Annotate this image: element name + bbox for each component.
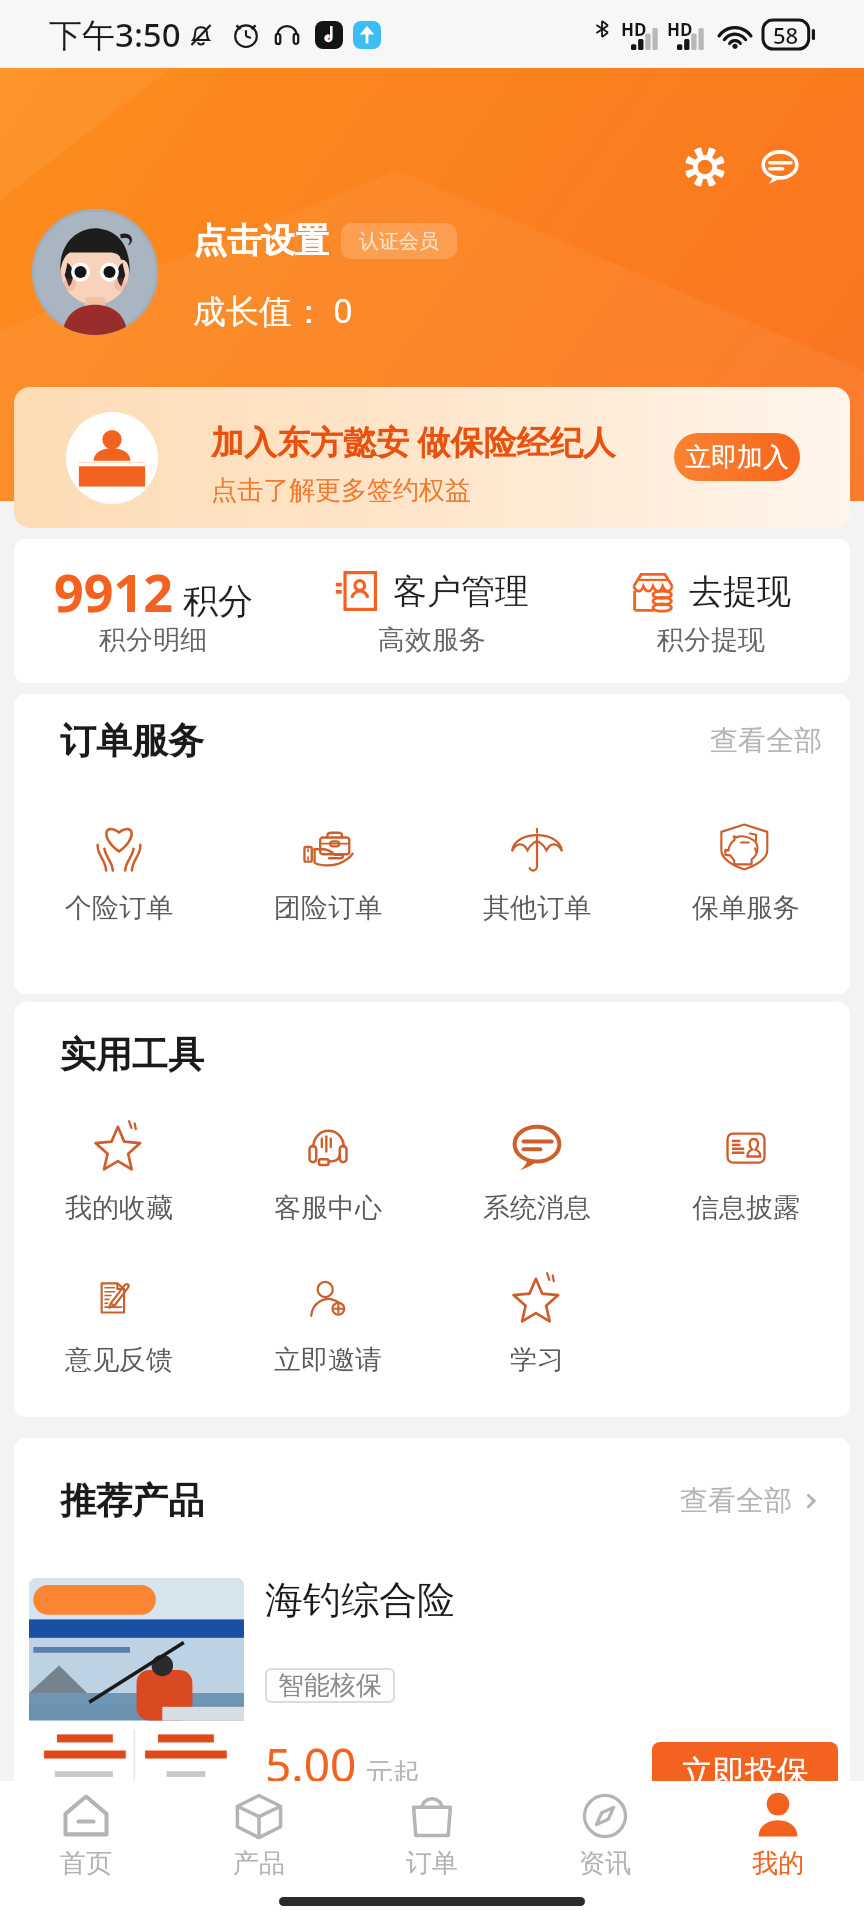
staticText: 推荐产品 <box>60 1478 204 1523</box>
staticText: 保单服务 <box>692 891 800 925</box>
staticText: 立即邀请 <box>274 1343 382 1377</box>
staticText: 实用工具 <box>60 1032 204 1077</box>
staticText: 认证会员 <box>359 229 439 254</box>
staticText: 学习 <box>510 1343 564 1377</box>
button[interactable]: 意见反馈 <box>14 1271 223 1377</box>
button[interactable] <box>29 1578 244 1808</box>
button[interactable]: 立即加入 <box>674 433 800 481</box>
button[interactable]: 保单服务 <box>641 819 850 925</box>
staticText: 查看全部 <box>680 1483 792 1518</box>
staticText: 5.00 <box>265 1733 357 1796</box>
staticText: 积分提现 <box>657 623 765 657</box>
staticText: 客服中心 <box>274 1191 382 1225</box>
button[interactable]: 立即投保 <box>652 1742 838 1802</box>
staticText: 系统消息 <box>483 1191 591 1225</box>
staticText: 成长值： 0 <box>193 288 353 333</box>
staticText: 我的 <box>752 1847 804 1880</box>
button[interactable]: 去提现 <box>571 539 850 683</box>
button[interactable]: 其他订单 <box>432 819 641 925</box>
staticText: 客户管理 <box>393 570 529 613</box>
button[interactable]: 我的 <box>691 1781 864 1880</box>
button[interactable]: 我的收藏 <box>14 1119 223 1225</box>
staticText: 团险订单 <box>274 891 382 925</box>
staticText: 订单 <box>406 1847 458 1880</box>
button[interactable]: 资讯 <box>518 1781 691 1880</box>
staticText: 信息披露 <box>692 1191 800 1225</box>
staticText: 元起 <box>365 1756 421 1791</box>
button[interactable]: 产品 <box>172 1781 345 1880</box>
staticText: 智能核保 <box>278 1669 382 1702</box>
staticText: 高效服务 <box>378 623 486 657</box>
staticText: 其他订单 <box>483 891 591 925</box>
staticText: HD <box>621 18 647 41</box>
button[interactable]: Messages <box>756 143 804 191</box>
staticText: 下午3:50 <box>49 12 181 57</box>
staticText: 去提现 <box>689 570 791 613</box>
button[interactable] <box>32 209 158 335</box>
button[interactable]: 信息披露 <box>641 1119 850 1225</box>
staticText: 首页 <box>60 1847 112 1880</box>
staticText: 资讯 <box>579 1847 631 1880</box>
staticText: 点击了解更多签约权益 <box>211 474 471 507</box>
staticText: 我的收藏 <box>65 1191 173 1225</box>
button[interactable]: 查看全部 <box>710 723 822 758</box>
staticText: 积分 <box>183 579 253 623</box>
button[interactable]: 客服中心 <box>223 1119 432 1225</box>
button[interactable]: 查看全部 <box>680 1483 822 1518</box>
button[interactable]: 个险订单 <box>14 819 223 925</box>
button[interactable]: 学习 <box>432 1271 641 1377</box>
button[interactable]: 加入东方懿安 做保险经纪人 <box>14 387 850 528</box>
staticText: 9912 <box>54 556 173 627</box>
button[interactable]: 首页 <box>0 1781 172 1880</box>
button[interactable]: 订单 <box>345 1781 518 1880</box>
staticText: 查看全部 <box>710 723 822 758</box>
button[interactable]: Settings <box>681 143 729 191</box>
staticText: 订单服务 <box>60 718 204 763</box>
staticText: 立即投保 <box>681 1752 809 1792</box>
staticText: 个险订单 <box>65 891 173 925</box>
button[interactable]: 客户管理 <box>292 539 571 683</box>
button[interactable]: 系统消息 <box>432 1119 641 1225</box>
staticText: 产品 <box>233 1847 285 1880</box>
staticText: 加入东方懿安 做保险经纪人 <box>211 419 616 464</box>
staticText: HD <box>667 18 693 41</box>
button[interactable]: 立即邀请 <box>223 1271 432 1377</box>
button[interactable]: 9912 <box>14 539 292 683</box>
staticText: 意见反馈 <box>65 1343 173 1377</box>
staticText: 点击设置 <box>193 219 329 262</box>
staticText: 积分明细 <box>99 623 207 657</box>
button[interactable]: 团险订单 <box>223 819 432 925</box>
staticText: 海钓综合险 <box>265 1576 455 1624</box>
staticText: 立即加入 <box>685 441 789 474</box>
staticText: 58 <box>773 20 799 50</box>
